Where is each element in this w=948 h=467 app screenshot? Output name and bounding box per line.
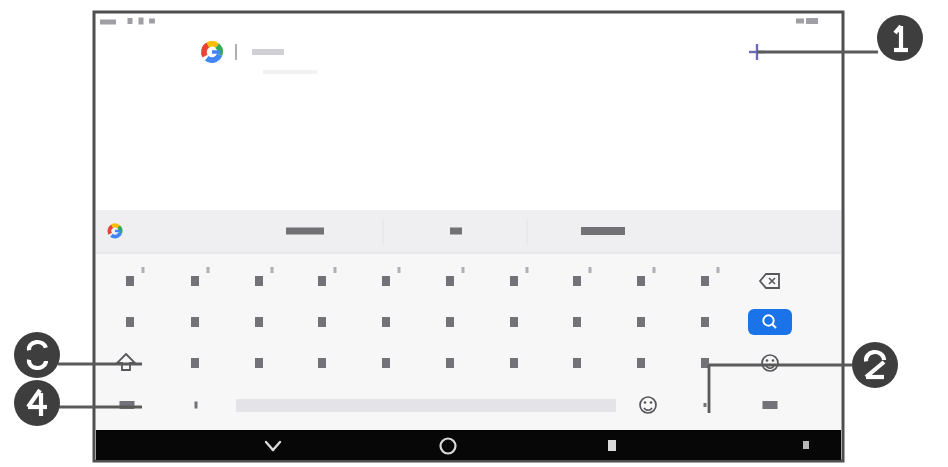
button[interactable]: Keyboard row 1 xyxy=(100,262,780,300)
button[interactable]: Home xyxy=(432,434,466,460)
button[interactable]: Search xyxy=(750,306,794,338)
button[interactable]: Search box xyxy=(160,36,720,70)
button[interactable]: Backspace xyxy=(750,262,794,300)
button[interactable]: Space xyxy=(236,396,616,418)
button[interactable]: Symbols xyxy=(748,392,798,420)
button[interactable]: Shift xyxy=(104,348,148,380)
button[interactable]: Emoji xyxy=(750,348,794,380)
button[interactable]: Back xyxy=(256,434,292,460)
button[interactable]: Add xyxy=(745,40,771,66)
button[interactable]: Recents xyxy=(598,434,628,460)
button[interactable]: Symbols xyxy=(104,392,154,420)
